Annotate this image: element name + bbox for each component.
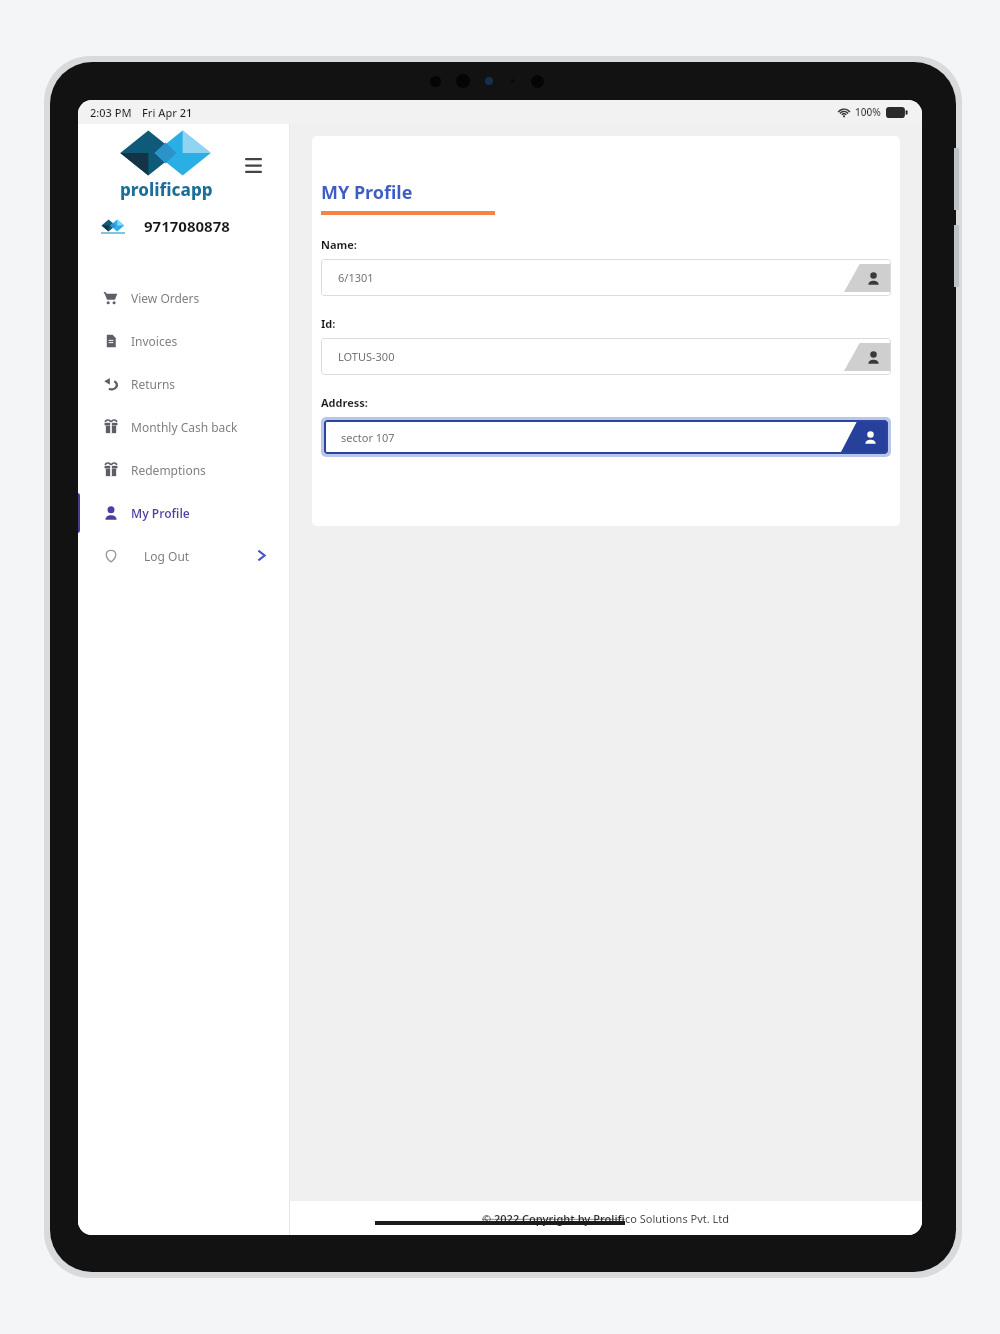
staticText: 6/1301 bbox=[338, 270, 374, 285]
staticText: Invoices bbox=[131, 333, 178, 349]
button[interactable]: Edit Name: bbox=[844, 264, 890, 292]
button[interactable]: Redemptions bbox=[78, 448, 290, 491]
staticText: Monthly Cash back bbox=[131, 419, 238, 435]
staticText: 100% bbox=[855, 105, 881, 119]
staticText: co Solutions Pvt. Ltd bbox=[625, 1211, 730, 1226]
button[interactable]: Returns bbox=[78, 362, 290, 405]
button[interactable]: Menu bbox=[238, 150, 268, 180]
staticText: View Orders bbox=[131, 290, 200, 306]
staticText: MY Profile bbox=[321, 180, 413, 205]
staticText: Name: bbox=[321, 237, 357, 252]
staticText: Redemptions bbox=[131, 462, 206, 478]
staticText: Log Out bbox=[144, 548, 190, 564]
staticText: Address: bbox=[321, 395, 368, 410]
staticText: prolificapp bbox=[120, 178, 213, 201]
button[interactable]: My Profile bbox=[78, 491, 290, 534]
staticText: Fri Apr 21 bbox=[142, 105, 193, 120]
button[interactable]: Edit Address: bbox=[841, 422, 887, 452]
button[interactable]: Monthly Cash back bbox=[78, 405, 290, 448]
button[interactable]: 9717080878 bbox=[78, 206, 290, 246]
button[interactable]: LOTUS-300 bbox=[321, 338, 891, 375]
staticText: © 2022 Copyright by Prolifi bbox=[482, 1211, 625, 1226]
staticText: Id: bbox=[321, 316, 336, 331]
staticText: 9717080878 bbox=[144, 216, 230, 236]
staticText: My Profile bbox=[131, 505, 190, 521]
button[interactable]: Edit Id: bbox=[844, 343, 890, 371]
button[interactable]: sector 107 bbox=[324, 420, 888, 454]
staticText: sector 107 bbox=[341, 430, 395, 445]
staticText: 2:03 PM bbox=[90, 105, 132, 120]
staticText: LOTUS-300 bbox=[338, 349, 395, 364]
button[interactable]: View Orders bbox=[78, 276, 290, 319]
button[interactable]: 6/1301 bbox=[321, 259, 891, 296]
button[interactable]: Log Out bbox=[78, 534, 290, 577]
button[interactable]: Invoices bbox=[78, 319, 290, 362]
staticText: Returns bbox=[131, 376, 176, 392]
